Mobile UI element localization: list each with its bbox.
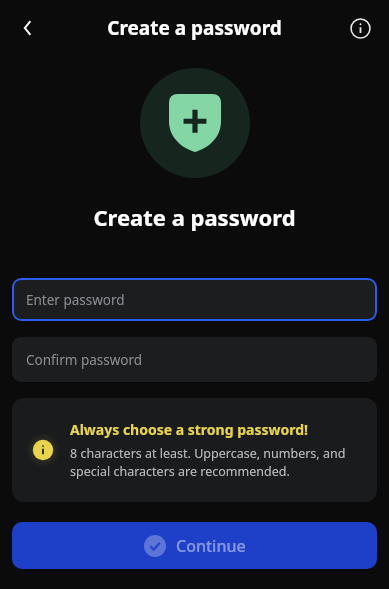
staticText: 8 characters at least. Uppercase, number… (70, 445, 365, 480)
staticText: Confirm password (26, 351, 143, 369)
button[interactable]: Back (6, 6, 50, 50)
staticText: Enter password (26, 291, 125, 309)
staticText: Create a password (107, 15, 282, 41)
button[interactable]: Info (339, 7, 381, 49)
button[interactable]: Continue (12, 522, 377, 569)
staticText: Always choose a strong password! (70, 420, 308, 439)
staticText: Continue (176, 535, 246, 557)
staticText: Create a password (93, 202, 296, 232)
button[interactable]: Enter password (12, 278, 377, 321)
button[interactable]: Confirm password (12, 337, 377, 382)
